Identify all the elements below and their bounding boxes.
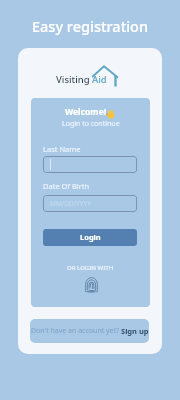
staticText: Login	[80, 232, 101, 242]
staticText: Login to continue	[62, 119, 120, 129]
staticText: MM/DD/YYYY	[50, 199, 91, 208]
button[interactable]	[43, 156, 137, 173]
button[interactable]: Login	[43, 229, 137, 246]
button[interactable]: MM/DD/YYYY	[43, 195, 137, 212]
staticText: Sign up	[121, 326, 149, 336]
staticText: Easy registration	[32, 16, 149, 36]
staticText: Visiting	[56, 73, 90, 86]
staticText: Don't have an account yet?	[31, 326, 121, 336]
staticText: OR LOGIN WITH	[67, 264, 114, 272]
staticText: Date Of Birth	[43, 181, 90, 191]
staticText: Welcome!	[65, 106, 107, 118]
staticText: Last Name	[43, 144, 81, 154]
button[interactable]: Login with fingerprint	[80, 275, 102, 297]
button[interactable]: Don't have an account yet?	[30, 319, 149, 343]
staticText: Aid	[92, 73, 107, 86]
